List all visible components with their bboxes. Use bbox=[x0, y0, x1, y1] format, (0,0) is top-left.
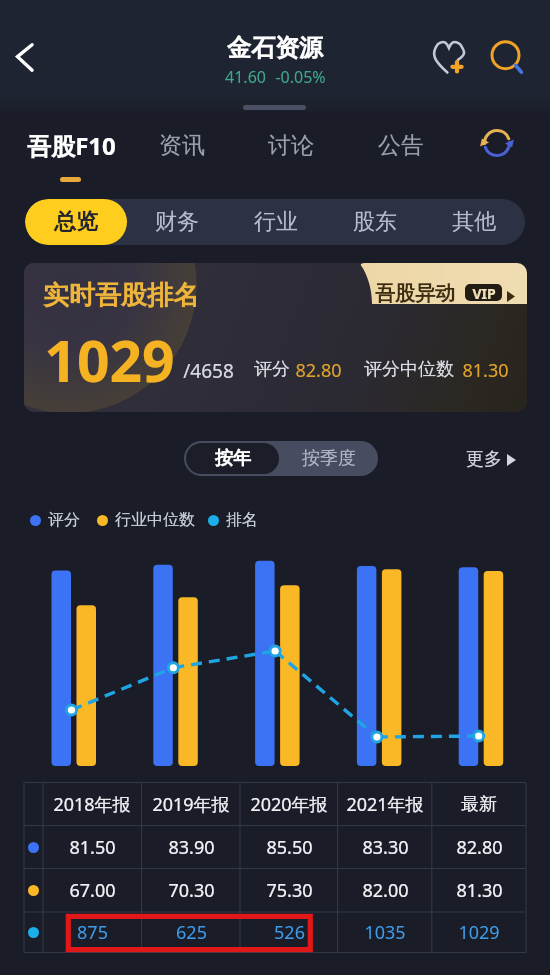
staticText: 实时吾股排名 bbox=[43, 279, 199, 312]
staticText: 评分 bbox=[254, 358, 290, 381]
staticText: 81.50 bbox=[69, 835, 116, 860]
staticText: 财务 bbox=[155, 208, 199, 236]
button[interactable]: 资讯 bbox=[147, 123, 217, 167]
staticText: 83.30 bbox=[362, 835, 409, 860]
staticText: 82.80 bbox=[456, 835, 503, 860]
button[interactable]: 按季度 bbox=[281, 443, 376, 474]
staticText: 2018年报 bbox=[53, 792, 131, 817]
staticText: 82.80 bbox=[295, 358, 342, 383]
staticText: 81.30 bbox=[456, 878, 503, 903]
button[interactable]: Add to watchlist bbox=[426, 33, 472, 79]
button[interactable]: 财务 bbox=[127, 199, 226, 245]
staticText: /4658 bbox=[183, 358, 234, 384]
button[interactable]: 吾股异动 bbox=[24, 263, 527, 412]
staticText: 526 bbox=[274, 920, 305, 945]
staticText: 公告 bbox=[378, 131, 424, 160]
staticText: 金石资源 bbox=[227, 33, 323, 63]
button[interactable]: 总览 bbox=[25, 199, 127, 245]
staticText: 81.30 bbox=[462, 358, 509, 383]
button[interactable]: 行业 bbox=[226, 199, 325, 245]
staticText: 85.50 bbox=[266, 835, 313, 860]
staticText: 讨论 bbox=[268, 131, 314, 160]
staticText: 最新 bbox=[461, 793, 497, 816]
staticText: -0.05% bbox=[275, 66, 326, 88]
button[interactable]: 按年 bbox=[186, 443, 279, 474]
staticText: 按年 bbox=[215, 447, 251, 470]
button[interactable]: Back bbox=[4, 32, 52, 80]
button[interactable]: 讨论 bbox=[256, 123, 326, 167]
button[interactable]: 公告 bbox=[366, 123, 436, 167]
staticText: 2019年报 bbox=[152, 792, 230, 817]
button[interactable]: Search bbox=[483, 32, 529, 78]
staticText: 评分 bbox=[48, 510, 80, 530]
staticText: 75.30 bbox=[266, 878, 313, 903]
staticText: 70.30 bbox=[168, 878, 215, 903]
button[interactable]: 股东 bbox=[325, 199, 424, 245]
staticText: 83.90 bbox=[168, 835, 215, 860]
staticText: 1029 bbox=[44, 321, 175, 399]
staticText: 行业 bbox=[254, 208, 298, 236]
staticText: 更多 bbox=[466, 448, 502, 471]
staticText: 41.60 bbox=[225, 66, 266, 88]
button[interactable]: 吾股F10 bbox=[16, 123, 126, 167]
staticText: 排名 bbox=[226, 510, 258, 530]
staticText: 625 bbox=[176, 920, 207, 945]
staticText: 按季度 bbox=[302, 447, 356, 470]
staticText: 2021年报 bbox=[346, 792, 424, 817]
staticText: 82.00 bbox=[362, 878, 409, 903]
staticText: 吾股异动 bbox=[375, 281, 455, 306]
staticText: VIP bbox=[472, 284, 496, 301]
button[interactable]: Refresh bbox=[477, 123, 517, 163]
staticText: 其他 bbox=[452, 208, 496, 236]
button[interactable]: 吾股异动 bbox=[361, 263, 527, 304]
staticText: 股东 bbox=[353, 208, 397, 236]
button[interactable]: 其他 bbox=[424, 199, 523, 245]
staticText: 资讯 bbox=[159, 131, 205, 160]
staticText: 评分中位数 bbox=[364, 358, 454, 381]
staticText: 67.00 bbox=[69, 878, 116, 903]
staticText: 1035 bbox=[364, 920, 406, 945]
staticText: 1029 bbox=[458, 920, 500, 945]
staticText: 875 bbox=[77, 920, 108, 945]
button[interactable]: 更多 bbox=[466, 448, 516, 471]
staticText: 吾股F10 bbox=[27, 129, 116, 162]
staticText: 总览 bbox=[54, 208, 98, 236]
staticText: 2020年报 bbox=[250, 792, 328, 817]
staticText: 行业中位数 bbox=[115, 510, 195, 530]
